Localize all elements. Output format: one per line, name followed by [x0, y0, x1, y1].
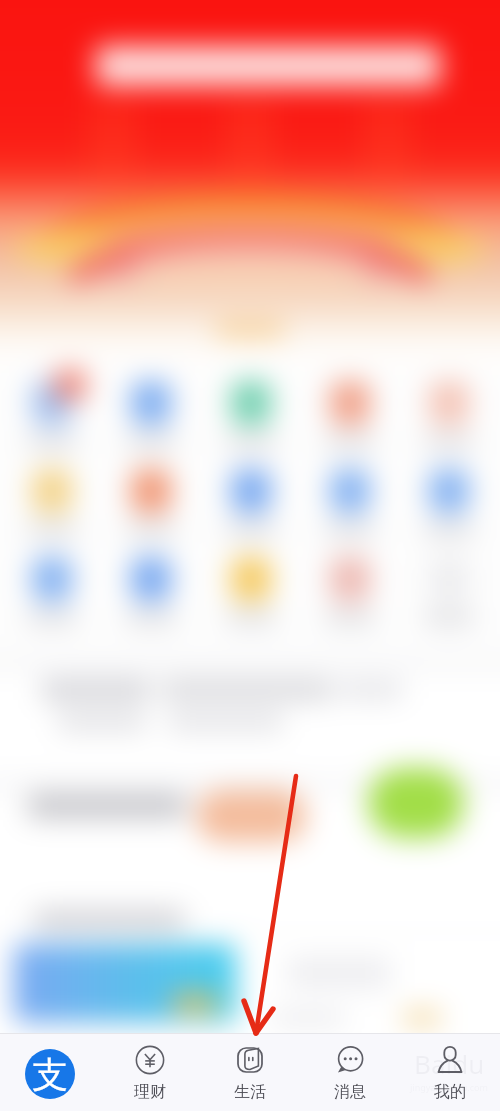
button[interactable] — [302, 557, 397, 624]
button[interactable] — [0, 670, 500, 778]
button[interactable] — [401, 469, 496, 536]
button[interactable]: 理财 — [100, 1034, 200, 1111]
staticText: jingyan.baidu.com — [410, 1081, 488, 1093]
staticText: 生活 — [234, 1082, 266, 1102]
button[interactable] — [203, 557, 298, 624]
staticText: 消息 — [334, 1082, 366, 1102]
staticText: 支 — [32, 1052, 68, 1097]
button[interactable] — [4, 381, 99, 448]
staticText: 理财 — [134, 1082, 166, 1102]
button[interactable] — [401, 557, 496, 624]
button[interactable] — [0, 790, 500, 930]
button[interactable] — [103, 381, 198, 448]
button[interactable] — [0, 932, 500, 1033]
button[interactable] — [103, 557, 198, 624]
button[interactable]: 生活 — [200, 1034, 300, 1111]
button[interactable] — [4, 557, 99, 624]
staticText: 我的 — [434, 1082, 466, 1102]
button[interactable]: 消息 — [300, 1034, 400, 1111]
button[interactable] — [96, 46, 440, 86]
button[interactable]: 我的 — [400, 1034, 500, 1111]
button[interactable] — [203, 381, 298, 448]
button[interactable] — [401, 381, 496, 448]
button[interactable] — [203, 469, 298, 536]
button[interactable]: 支付宝首页 — [0, 1034, 100, 1111]
button[interactable] — [103, 469, 198, 536]
button[interactable] — [302, 469, 397, 536]
staticText: Baidu — [414, 1046, 485, 1081]
button[interactable] — [302, 381, 397, 448]
button[interactable] — [4, 469, 99, 536]
